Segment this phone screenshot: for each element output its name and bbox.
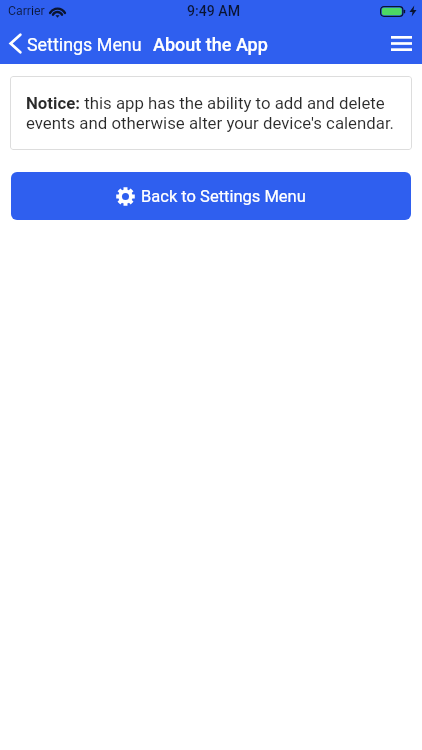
button[interactable]: Back to Settings Menu: [11, 172, 411, 220]
staticText: Back to Settings Menu: [141, 187, 306, 206]
button[interactable]: Menu: [385, 28, 417, 60]
button[interactable]: Settings Menu: [7, 34, 142, 55]
staticText: 9:49 AM: [187, 3, 240, 20]
staticText: Notice: this app has the ability to add …: [26, 93, 396, 133]
staticText: Carrier: [8, 4, 45, 18]
staticText: Settings Menu: [27, 34, 142, 55]
staticText: About the App: [153, 34, 268, 55]
